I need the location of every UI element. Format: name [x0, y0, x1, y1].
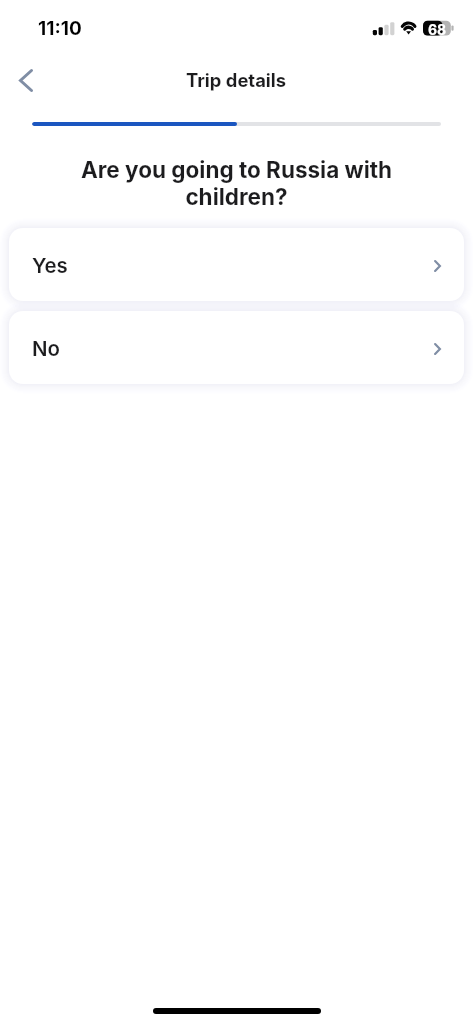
staticText: 11:10 [38, 17, 82, 40]
other: Wi-Fi [398, 19, 420, 38]
other: Cellular signal [372, 22, 395, 36]
other: Battery 68 percent [422, 20, 455, 37]
button[interactable]: Yes [9, 228, 464, 301]
button[interactable]: No [9, 311, 464, 384]
staticText: Are you going to Russia with children? [42, 156, 431, 210]
button[interactable]: Back [4, 58, 48, 102]
staticText: Trip details [186, 69, 287, 91]
staticText: Yes [32, 253, 68, 278]
staticText: No [32, 336, 60, 361]
staticText: 68 [428, 21, 447, 38]
